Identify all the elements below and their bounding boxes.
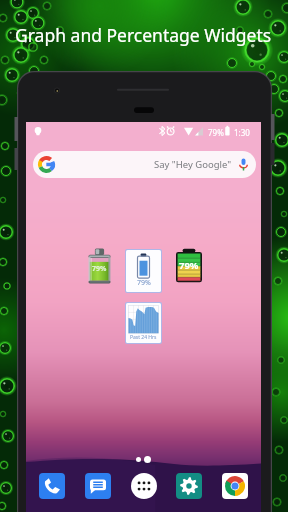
staticText: 79% <box>179 259 199 272</box>
staticText: Graph and Percentage Widgets <box>15 23 272 47</box>
button[interactable]: All apps <box>131 473 157 499</box>
staticText: 79% <box>92 264 107 274</box>
staticText: 1:30 <box>234 127 250 138</box>
button[interactable]: Battery 79 percent <box>126 250 161 292</box>
button[interactable]: Phone <box>39 473 65 499</box>
button[interactable]: Say "Hey Google" <box>33 151 256 178</box>
staticText: 79% <box>208 127 224 138</box>
button[interactable]: Messages <box>85 473 111 499</box>
button[interactable]: Battery graph past 24 hours <box>126 303 161 343</box>
staticText: Say "Hey Google" <box>154 158 232 171</box>
button[interactable]: Chrome <box>222 473 248 499</box>
button[interactable]: Battery level 79 percent <box>175 247 203 285</box>
staticText: Past 24 Hrs <box>130 334 157 341</box>
button[interactable]: Battery percentage 79 <box>88 248 111 286</box>
button[interactable]: Settings <box>176 473 202 499</box>
staticText: 79% <box>137 278 151 288</box>
